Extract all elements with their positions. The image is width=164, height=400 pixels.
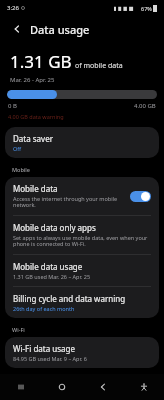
button[interactable]: Mobile data usage [5, 255, 159, 286]
staticText: Wi-Fi data usage [13, 343, 75, 354]
button[interactable]: Mobile data toggle [130, 191, 151, 202]
button[interactable]: Data saver [5, 127, 159, 158]
button[interactable]: Back [82, 374, 123, 400]
staticText: Wi-Fi [12, 326, 25, 333]
staticText: Billing cycle and data warning [13, 293, 126, 304]
button[interactable]: Mobile data [5, 177, 159, 215]
staticText: Access the internet through your mobile … [13, 195, 124, 209]
staticText: 67% [141, 5, 152, 12]
staticText: Off [13, 145, 22, 152]
staticText: 4.00 GB data warning [8, 113, 64, 120]
button[interactable]: Mobile data only apps [5, 216, 159, 254]
staticText: Data saver [13, 133, 53, 144]
staticText: 26th day of each month [13, 305, 75, 312]
staticText: 4.00 GB [134, 102, 156, 110]
button[interactable]: Back [8, 20, 26, 38]
staticText: 1.31 GB [10, 50, 72, 73]
staticText: 0 B [8, 102, 17, 110]
staticText: Data usage [30, 22, 90, 37]
staticText: Mobile data [13, 183, 58, 194]
staticText: Mobile data usage [13, 261, 83, 272]
staticText: Mar. 26 - Apr. 25 [10, 76, 55, 84]
button[interactable]: Billing cycle and data warning [5, 287, 159, 318]
button[interactable]: Wi-Fi data usage [5, 337, 159, 368]
staticText: 84.95 GB used Mar. 9 – Apr. 6 [13, 355, 87, 362]
button[interactable]: Home [41, 374, 82, 400]
button[interactable]: Recents [0, 374, 41, 400]
staticText: 3:26 [7, 4, 19, 12]
staticText: Mobile data only apps [13, 222, 96, 233]
staticText: Set apps to always use mobile data, even… [13, 234, 151, 248]
button[interactable]: Accessibility [123, 374, 164, 400]
staticText: 1.31 GB used Mar. 26 – Apr. 25 [13, 273, 91, 280]
staticText: Mobile [12, 166, 30, 173]
staticText: of mobile data [75, 61, 123, 71]
